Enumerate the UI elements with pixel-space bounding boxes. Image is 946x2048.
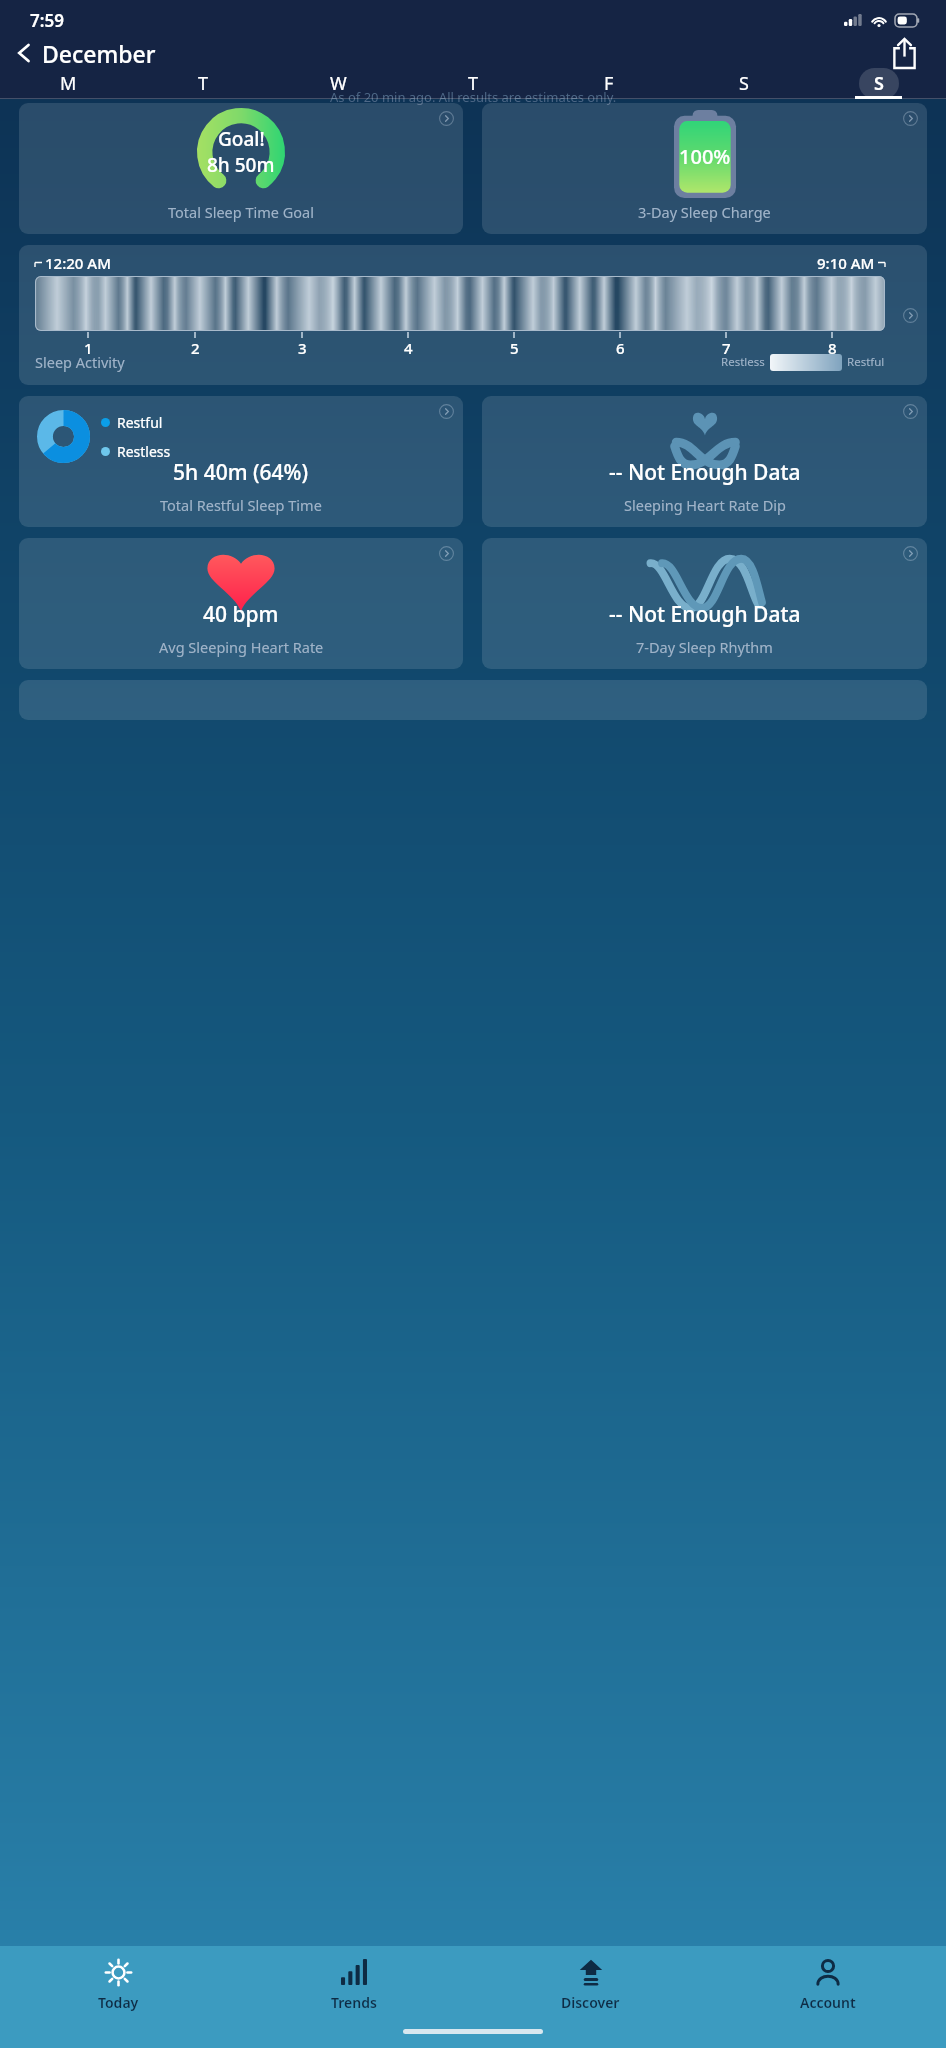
button[interactable]: W (271, 68, 406, 99)
staticText: 3 (298, 338, 307, 358)
staticText: Discover (561, 1993, 620, 2012)
staticText: Sleeping Heart Rate Dip (624, 495, 786, 515)
staticText: 7 (722, 338, 731, 358)
button[interactable]: Today (0, 1946, 236, 2022)
staticText: December (42, 38, 156, 69)
button[interactable]: S (676, 68, 811, 99)
other: Open sleep activity (903, 308, 918, 323)
staticText: T (468, 71, 479, 96)
staticText: Account (800, 1993, 856, 2012)
staticText: 7-Day Sleep Rhythm (636, 637, 773, 657)
staticText: Total Sleep Time Goal (168, 202, 314, 222)
button[interactable]: Open details (482, 396, 927, 527)
staticText: 8h 50m (207, 152, 275, 178)
staticText: -- Not Enough Data (609, 458, 801, 487)
other: Open details (903, 111, 918, 126)
staticText: Restless (117, 442, 171, 461)
staticText: 5h 40m (64%) (173, 458, 309, 487)
staticText: Total Restful Sleep Time (160, 495, 322, 515)
button[interactable]: M (0, 68, 136, 99)
staticText: F (604, 71, 614, 96)
staticText: 4 (404, 338, 413, 358)
staticText: 40 bpm (203, 600, 279, 629)
staticText: S (739, 71, 749, 96)
button[interactable]: Open details (19, 538, 463, 669)
staticText: W (330, 71, 347, 96)
button[interactable]: Discover (472, 1946, 709, 2022)
button[interactable]: T (406, 68, 541, 99)
staticText: 3-Day Sleep Charge (638, 202, 771, 222)
button[interactable]: T (136, 68, 271, 99)
staticText: Restless (721, 354, 765, 370)
button[interactable]: Trends (236, 1946, 472, 2022)
staticText: 100% (679, 143, 731, 170)
button[interactable]: S (811, 68, 946, 99)
staticText: S (874, 71, 884, 96)
staticText: As of 20 min ago. All results are estima… (330, 88, 617, 106)
staticText: 12:20 AM (45, 253, 111, 273)
staticText: Trends (331, 1993, 377, 2012)
button[interactable]: Open details (19, 396, 463, 527)
staticText: Goal! (218, 126, 265, 152)
staticText: M (60, 71, 77, 96)
button[interactable]: F (541, 68, 676, 99)
staticText: 6 (616, 338, 625, 358)
other: Open details (903, 404, 918, 419)
staticText: Restful (847, 354, 885, 370)
staticText: 2 (191, 338, 200, 358)
staticText: Avg Sleeping Heart Rate (159, 637, 324, 657)
button[interactable]: Open details (19, 103, 463, 234)
staticText: -- Not Enough Data (609, 600, 801, 629)
staticText: 8 (828, 338, 837, 358)
button[interactable]: Account (709, 1946, 946, 2022)
button[interactable]: Back (8, 36, 42, 70)
other: Open details (439, 111, 454, 126)
staticText: 9:10 AM (817, 253, 875, 273)
staticText: 7:59 (30, 9, 64, 32)
staticText: Today (98, 1993, 139, 2012)
button[interactable]: Share (886, 36, 922, 70)
staticText: 1 (84, 338, 93, 358)
staticText: Sleep Activity (35, 352, 125, 372)
other: Open details (439, 404, 454, 419)
staticText: Restful (117, 413, 163, 432)
staticText: 5 (510, 338, 519, 358)
button[interactable]: Open details (482, 538, 927, 669)
other: Open details (903, 546, 918, 561)
other: Open details (439, 546, 454, 561)
staticText: T (198, 71, 209, 96)
button[interactable]: Open sleep activity (19, 245, 927, 385)
button[interactable]: Open details (482, 103, 927, 234)
